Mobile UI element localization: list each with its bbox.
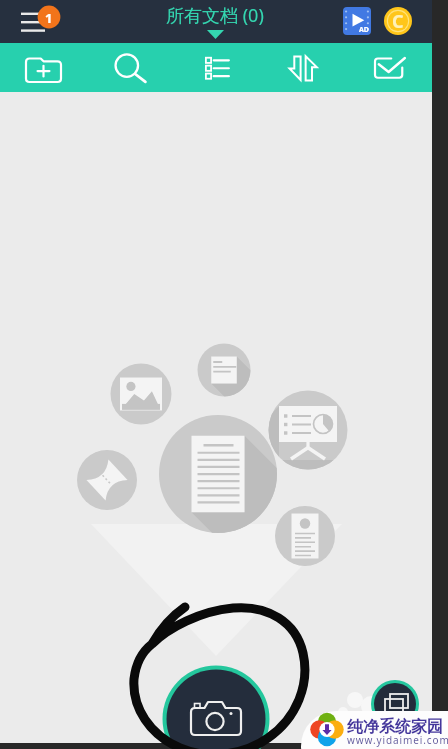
- button[interactable]: Sort: [260, 43, 346, 92]
- button[interactable]: New folder: [0, 43, 87, 92]
- button[interactable]: Import from gallery: [0, 92, 432, 743]
- button[interactable]: List view: [174, 43, 260, 92]
- staticText: 所有文档 (0): [166, 3, 264, 28]
- button[interactable]: Select all: [346, 43, 432, 92]
- button[interactable]: Scan with camera: [0, 92, 432, 743]
- staticText: AD: [359, 25, 369, 35]
- staticText: C: [392, 9, 404, 34]
- button[interactable]: Coins: [384, 7, 412, 35]
- staticText: www.yidaimei.com: [347, 733, 448, 747]
- staticText: 纯净系统家园: [347, 717, 443, 737]
- button[interactable]: Watch ad video: [343, 7, 371, 35]
- button[interactable]: Search: [87, 43, 174, 92]
- button[interactable]: Menu: [0, 0, 62, 43]
- staticText: 1: [45, 9, 53, 27]
